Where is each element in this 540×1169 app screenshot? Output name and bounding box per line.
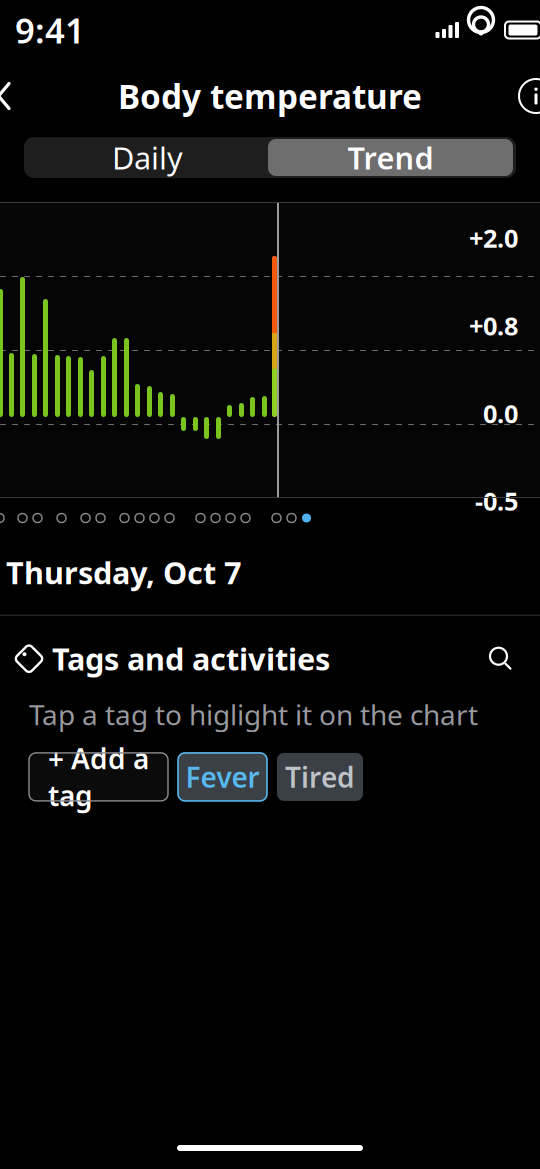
staticText: Daily (112, 137, 183, 178)
staticText: Tags and activities (52, 638, 330, 679)
button[interactable]: + Add a tag (29, 753, 168, 801)
staticText: Tired (285, 758, 355, 795)
button[interactable]: Back (0, 68, 32, 124)
button[interactable]: Trend (268, 139, 513, 176)
button[interactable]: Search tags (474, 632, 528, 686)
staticText: Tap a tag to higlight it on the chart (29, 696, 478, 733)
button[interactable]: Tired (277, 753, 363, 801)
button[interactable]: Daily (27, 139, 268, 176)
staticText: Fever (185, 758, 259, 795)
staticText: Trend (347, 137, 433, 178)
staticText: Thursday, Oct 7 (6, 552, 242, 593)
button[interactable]: Information (508, 68, 540, 124)
staticText: 9:41 (15, 7, 85, 53)
staticText: 0.0 (483, 396, 518, 430)
staticText: +0.8 (469, 309, 518, 342)
button[interactable]: Fever (178, 753, 267, 801)
staticText: -0.5 (475, 484, 518, 518)
staticText: Body temperature (118, 74, 422, 118)
staticText: +2.0 (469, 221, 518, 255)
staticText: + Add a tag (48, 740, 149, 814)
